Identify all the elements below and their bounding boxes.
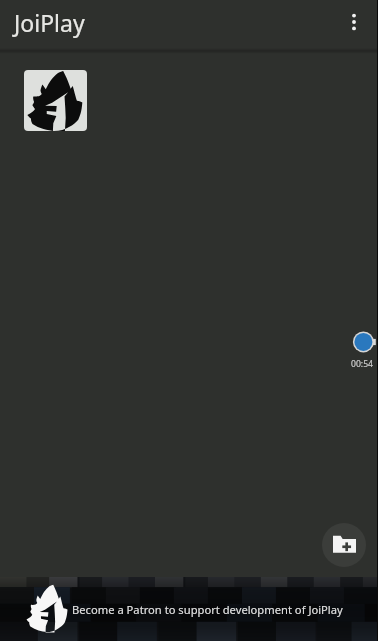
button[interactable]: Add folder	[322, 523, 366, 567]
button[interactable]: More options	[332, 0, 376, 44]
staticText: JoiPlay	[14, 7, 85, 38]
button[interactable]: Scroll position	[350, 327, 378, 355]
staticText: 00:54	[351, 358, 373, 370]
button[interactable]: Become a Patron to support development o…	[0, 577, 378, 641]
button[interactable]	[24, 70, 87, 131]
staticText: Become a Patron to support development o…	[72, 602, 343, 617]
